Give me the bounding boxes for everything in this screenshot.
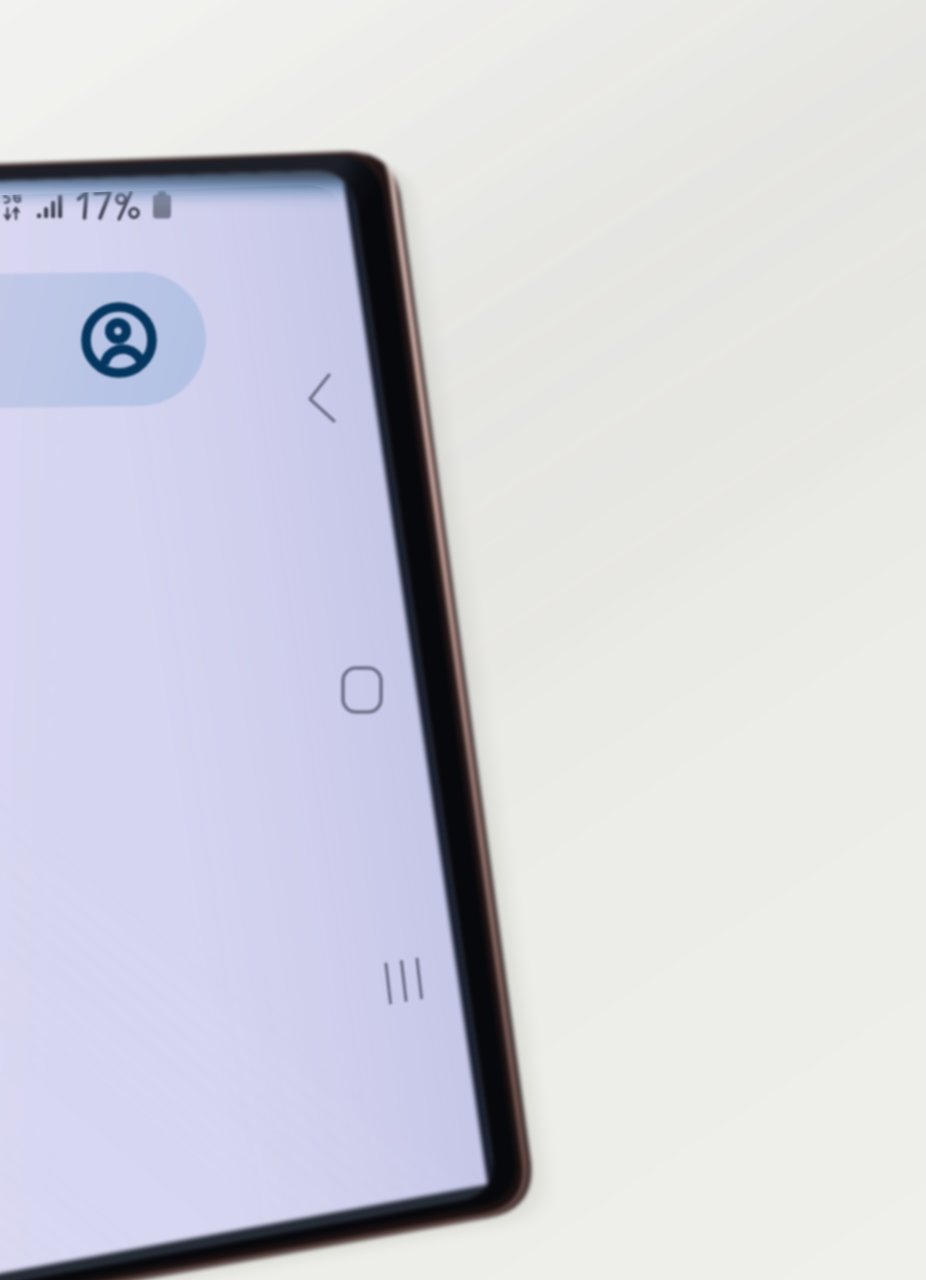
button[interactable]: Status bar	[0, 180, 190, 230]
button[interactable]: Account profile	[60, 272, 210, 406]
button[interactable]: Home	[326, 652, 402, 728]
button[interactable]: Recent apps	[366, 948, 438, 1020]
button[interactable]: Back	[294, 362, 358, 434]
